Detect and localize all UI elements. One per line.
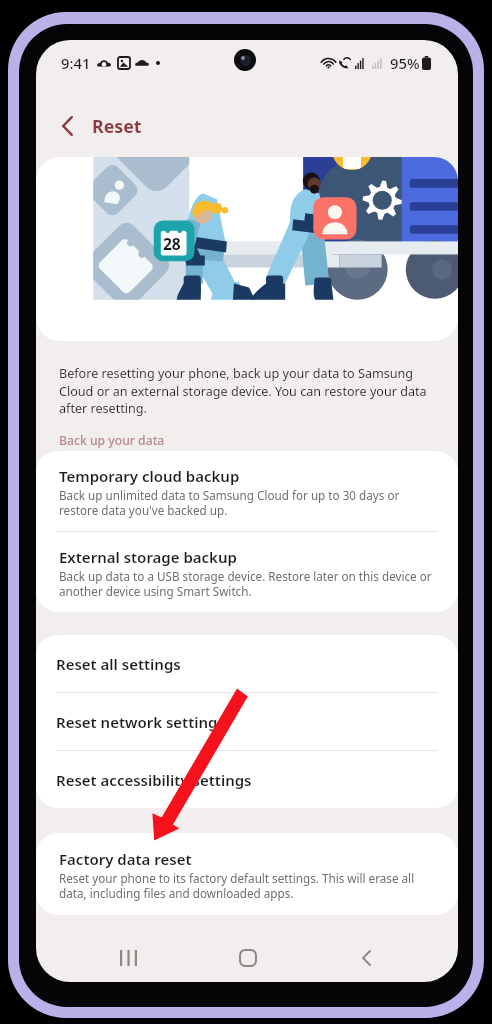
staticText: Back up your data [59, 432, 165, 449]
staticText: Before resetting your phone, back up you… [59, 365, 450, 416]
staticText: Back up unlimited data to Samsung Cloud … [59, 487, 433, 519]
button[interactable]: Home [218, 947, 278, 969]
staticText: Reset accessibility settings [56, 770, 252, 790]
staticText: External storage backup [59, 547, 237, 567]
button[interactable]: Back [336, 947, 396, 969]
button[interactable]: Back up your data [59, 432, 165, 449]
staticText: Factory data reset [59, 849, 192, 869]
button[interactable]: Recent apps [92, 947, 164, 969]
button[interactable]: Reset all settings [36, 635, 458, 692]
button[interactable]: External storage backup [36, 532, 458, 612]
staticText: Reset network settings [56, 712, 225, 732]
button[interactable]: Reset accessibility settings [36, 751, 458, 808]
staticText: Reset your phone to its factory default … [59, 870, 433, 901]
staticText: Back up data to a USB storage device. Re… [59, 568, 433, 600]
button[interactable]: Reset network settings [36, 693, 458, 750]
staticText: 9:41 [61, 53, 91, 73]
button[interactable]: Factory data reset [36, 833, 458, 915]
staticText: 95% [390, 53, 420, 73]
button[interactable]: Temporary cloud backup [36, 451, 458, 531]
staticText: Reset all settings [56, 654, 181, 674]
staticText: Temporary cloud backup [59, 466, 240, 486]
button[interactable]: Back [46, 105, 88, 147]
staticText: Reset [92, 114, 142, 138]
staticText: 28 [163, 233, 181, 254]
